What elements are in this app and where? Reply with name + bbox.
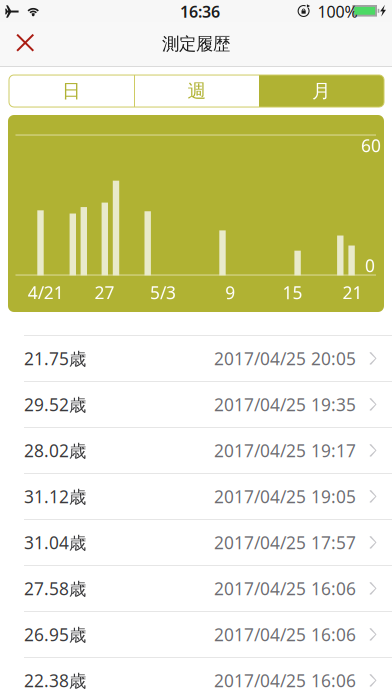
staticText: 4/21 xyxy=(28,281,64,304)
staticText: 0 xyxy=(365,254,375,277)
button[interactable]: 月 xyxy=(259,75,384,107)
staticText: 15 xyxy=(283,281,303,304)
button[interactable]: 31.04歳 xyxy=(0,519,392,565)
button[interactable]: 日 xyxy=(9,75,134,107)
button[interactable]: 22.38歳 xyxy=(0,657,392,696)
staticText: 2017/04/25 19:17 xyxy=(214,439,356,462)
staticText: 2017/04/25 20:05 xyxy=(214,347,356,370)
staticText: 29.52歳 xyxy=(24,393,86,416)
staticText: 2017/04/25 17:57 xyxy=(214,531,356,554)
staticText: 21.75歳 xyxy=(24,347,86,370)
staticText: 28.02歳 xyxy=(24,439,86,462)
staticText: 100% xyxy=(317,1,357,22)
button[interactable]: 27.58歳 xyxy=(0,565,392,611)
staticText: 2017/04/25 16:06 xyxy=(214,623,356,646)
staticText: 日 xyxy=(62,79,81,102)
staticText: 60 xyxy=(361,134,381,157)
staticText: 5/3 xyxy=(150,281,176,304)
staticText: 9 xyxy=(225,281,235,304)
staticText: 2017/04/25 16:06 xyxy=(214,577,356,600)
button[interactable]: 閉じる xyxy=(0,22,51,66)
button[interactable]: 26.95歳 xyxy=(0,611,392,657)
button[interactable]: 28.02歳 xyxy=(0,427,392,473)
staticText: 21 xyxy=(343,281,363,304)
staticText: 月 xyxy=(312,79,331,102)
staticText: 31.04歳 xyxy=(24,531,86,554)
staticText: 27.58歳 xyxy=(24,577,86,600)
button[interactable]: 21.75歳 xyxy=(0,335,392,381)
staticText: 2017/04/25 19:05 xyxy=(214,485,356,508)
button[interactable]: 29.52歳 xyxy=(0,381,392,427)
staticText: 2017/04/25 19:35 xyxy=(214,393,356,416)
button[interactable]: 31.12歳 xyxy=(0,473,392,519)
staticText: 26.95歳 xyxy=(24,623,86,646)
staticText: 31.12歳 xyxy=(24,485,86,508)
staticText: 測定履歴 xyxy=(162,33,230,55)
staticText: 2017/04/25 16:06 xyxy=(214,669,356,692)
staticText: 22.38歳 xyxy=(24,669,86,692)
staticText: 16:36 xyxy=(180,1,220,22)
staticText: 27 xyxy=(95,281,115,304)
staticText: 週 xyxy=(187,79,206,102)
button[interactable]: 週 xyxy=(135,75,259,107)
